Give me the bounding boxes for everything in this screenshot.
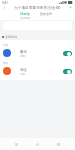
button[interactable]: Toggle [63, 69, 72, 74]
staticText: 六个项目需要你的关注(全部) [14, 5, 61, 10]
button[interactable]: Back [1, 4, 7, 10]
staticText: 消息 [20, 54, 26, 57]
button[interactable]: 昨天 [0, 58, 75, 76]
button[interactable]: Recents [54, 140, 63, 149]
staticText: 今日新增 [20, 17, 30, 20]
staticText: 淘宝 [20, 68, 27, 72]
staticText: 今天 [3, 43, 9, 46]
button[interactable]: Home [33, 140, 42, 149]
button[interactable]: Add [67, 4, 73, 10]
staticText: 查看全部 [40, 12, 52, 16]
staticText: 订单 [20, 72, 26, 75]
staticText: 昨天 [3, 61, 9, 64]
staticText: 微信 [20, 50, 27, 54]
button[interactable]: Toggle [63, 51, 72, 56]
button[interactable]: 今天 [0, 40, 75, 58]
staticText: 待处理 [20, 12, 30, 16]
staticText: 9:41 [2, 1, 8, 5]
staticText: 全部应用 [5, 35, 17, 39]
button[interactable]: Back [12, 140, 21, 149]
